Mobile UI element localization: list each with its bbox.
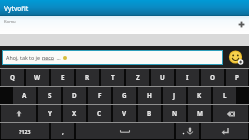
- button[interactable]: P: [226, 69, 248, 86]
- button[interactable]: A: [13, 87, 36, 104]
- staticText: O: [210, 73, 215, 82]
- staticText: A: [22, 91, 27, 100]
- button[interactable]: V: [113, 105, 136, 122]
- button[interactable]: Insert emoji: [224, 46, 249, 68]
- staticText: F: [98, 91, 102, 100]
- button[interactable]: F: [88, 87, 111, 104]
- staticText: K: [197, 91, 202, 100]
- staticText: W: [34, 73, 41, 82]
- button[interactable]: H: [138, 87, 161, 104]
- button[interactable]: Space: [76, 123, 174, 139]
- button[interactable]: S: [38, 87, 61, 104]
- staticText: neco: [42, 54, 55, 61]
- staticText: U: [160, 73, 165, 82]
- staticText: ,: [62, 127, 64, 136]
- button[interactable]: Voice input: [176, 123, 199, 139]
- staticText: I: [186, 73, 189, 82]
- staticText: Y: [48, 109, 52, 118]
- button[interactable]: I: [176, 69, 199, 86]
- button[interactable]: N: [163, 105, 186, 122]
- button[interactable]: R: [76, 69, 99, 86]
- button[interactable]: M: [188, 105, 211, 122]
- staticText: G: [122, 91, 127, 100]
- button[interactable]: Add recipient: [237, 20, 246, 29]
- staticText: Komu: [4, 19, 16, 25]
- button[interactable]: D: [63, 87, 86, 104]
- staticText: L: [223, 91, 227, 100]
- button[interactable]: U: [151, 69, 174, 86]
- button[interactable]: K: [188, 87, 211, 104]
- staticText: Z: [136, 73, 140, 82]
- staticText: Q: [10, 73, 15, 82]
- staticText: Vytvořit: [4, 4, 29, 13]
- button[interactable]: B: [138, 105, 161, 122]
- staticText: J: [173, 91, 176, 100]
- staticText: N: [172, 109, 178, 118]
- button[interactable]: Enter: [201, 123, 248, 139]
- button[interactable]: X: [63, 105, 86, 122]
- button[interactable]: ?123: [1, 123, 49, 139]
- button[interactable]: ,: [51, 123, 74, 139]
- staticText: H: [147, 91, 152, 100]
- staticText: ?123: [19, 128, 31, 135]
- button[interactable]: G: [113, 87, 136, 104]
- staticText: S: [48, 91, 52, 100]
- staticText: ...: [55, 54, 63, 61]
- button[interactable]: C: [88, 105, 111, 122]
- button[interactable]: T: [101, 69, 124, 86]
- staticText: R: [85, 73, 90, 82]
- button[interactable]: Q: [1, 69, 24, 86]
- button[interactable]: Y: [38, 105, 61, 122]
- staticText: C: [97, 109, 102, 118]
- button[interactable]: W: [26, 69, 49, 86]
- staticText: X: [72, 109, 77, 118]
- button[interactable]: Z: [126, 69, 149, 86]
- button[interactable]: Shift: [1, 105, 36, 122]
- staticText: V: [122, 109, 127, 118]
- staticText: D: [72, 91, 77, 100]
- button[interactable]: L: [213, 87, 236, 104]
- button[interactable]: Backspace: [213, 105, 248, 122]
- staticText: E: [61, 73, 65, 82]
- button[interactable]: Ahoj, tak to je: [2, 50, 223, 65]
- button[interactable]: O: [201, 69, 224, 86]
- staticText: T: [111, 73, 115, 82]
- button[interactable]: E: [51, 69, 74, 86]
- button[interactable]: J: [163, 87, 186, 104]
- staticText: B: [147, 109, 152, 118]
- staticText: Ahoj, tak to je: [6, 54, 42, 61]
- button[interactable]: Vytvořit: [0, 0, 249, 16]
- staticText: P: [235, 73, 239, 82]
- staticText: M: [197, 109, 203, 118]
